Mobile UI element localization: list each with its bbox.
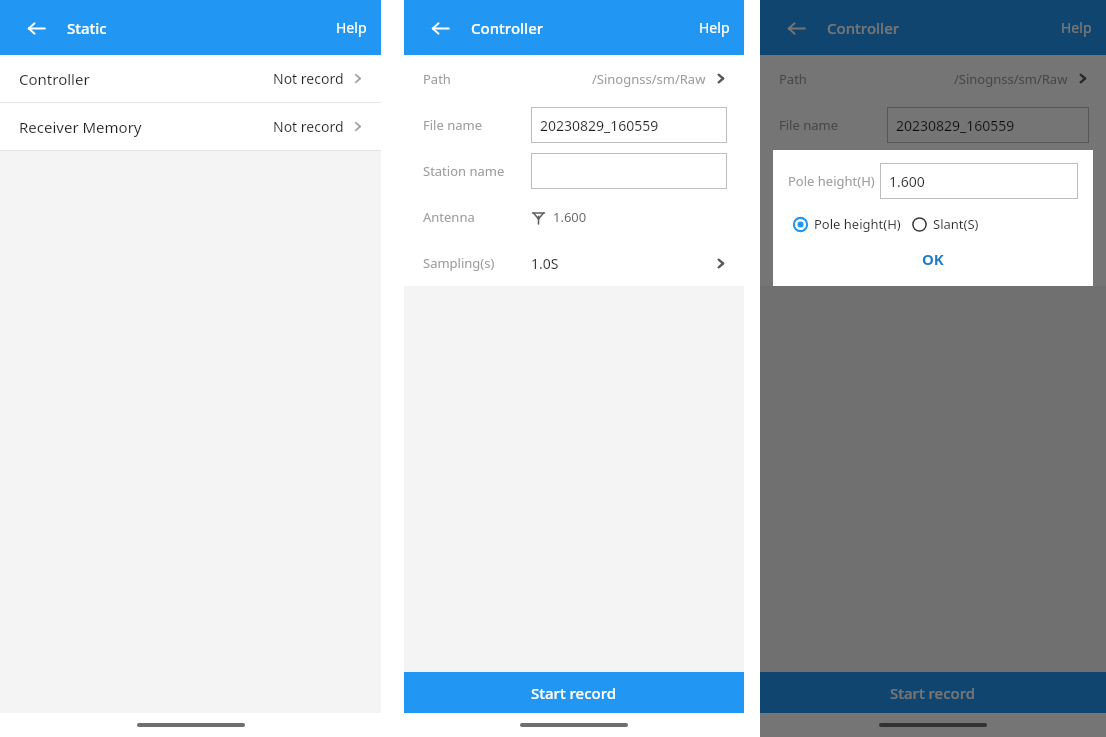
button[interactable] — [531, 153, 727, 189]
button[interactable]: Path — [760, 55, 1106, 102]
staticText: File name — [779, 116, 887, 134]
staticText: Help — [699, 18, 730, 37]
staticText: File name — [423, 116, 531, 134]
staticText: Antenna — [779, 208, 887, 226]
staticText: Controller — [827, 18, 900, 38]
staticText: /Sinognss/sm/Raw — [954, 70, 1068, 88]
staticText: Start record — [531, 683, 617, 703]
staticText: Help — [336, 18, 367, 37]
staticText: Station name — [423, 162, 531, 180]
staticText: 1.600 — [553, 208, 587, 226]
button[interactable]: OK — [788, 245, 1078, 273]
staticText: Static — [67, 18, 107, 38]
staticText: Controller — [19, 69, 90, 89]
staticText: 20230829_160559 — [540, 116, 659, 135]
staticText: 1.0S — [531, 254, 559, 273]
button[interactable]: Controller — [0, 55, 381, 102]
button[interactable]: 1.600 — [880, 163, 1078, 199]
button[interactable]: Antenna — [404, 194, 744, 240]
staticText: /Sinognss/sm/Raw — [592, 70, 706, 88]
staticText: Station name — [779, 162, 887, 180]
button[interactable]: Receiver Memory — [0, 103, 381, 150]
staticText: Help — [1061, 18, 1092, 37]
button[interactable]: Help — [1047, 8, 1106, 47]
button[interactable]: Help — [322, 8, 381, 47]
button[interactable]: Pole height(H) — [793, 212, 901, 236]
staticText: Not record — [273, 117, 344, 136]
button[interactable]: Help — [685, 8, 744, 47]
staticText: Path — [779, 70, 807, 88]
button[interactable]: Antenna — [760, 194, 1106, 240]
staticText: Slant(S) — [933, 215, 979, 233]
staticText: Start record — [890, 683, 976, 703]
staticText: 1.600 — [889, 172, 925, 191]
button[interactable] — [887, 153, 1089, 189]
button[interactable]: 20230829_160559 — [887, 107, 1089, 143]
button[interactable]: Start record — [404, 672, 744, 713]
staticText: 1.600 — [909, 208, 943, 226]
staticText: OK — [922, 249, 944, 269]
button[interactable]: Back — [20, 12, 52, 44]
staticText: Controller — [471, 18, 544, 38]
button[interactable]: Start record — [760, 672, 1106, 713]
button[interactable]: Back — [780, 12, 812, 44]
staticText: Not record — [273, 69, 344, 88]
staticText: 20230829_160559 — [896, 116, 1015, 135]
staticText: Path — [423, 70, 451, 88]
button[interactable]: Slant(S) — [912, 212, 979, 236]
button[interactable]: Back — [424, 12, 456, 44]
button[interactable]: 20230829_160559 — [531, 107, 727, 143]
staticText: Sampling(s) — [423, 254, 531, 272]
staticText: Receiver Memory — [19, 117, 142, 137]
button[interactable]: Path — [404, 55, 744, 102]
staticText: Pole height(H) — [788, 172, 875, 190]
staticText: Pole height(H) — [814, 215, 901, 233]
staticText: Antenna — [423, 208, 531, 226]
button[interactable]: Sampling(s) — [760, 240, 1106, 286]
button[interactable]: Sampling(s) — [404, 240, 744, 286]
